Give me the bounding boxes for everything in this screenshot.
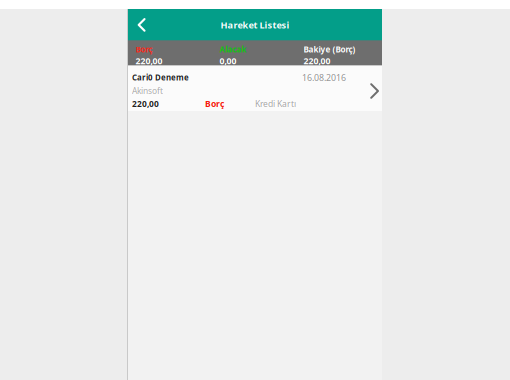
staticText: Alacak bbox=[219, 44, 246, 55]
staticText: Bakiye (Borç) bbox=[303, 44, 355, 55]
button[interactable]: Cari0 Deneme bbox=[128, 66, 382, 111]
button[interactable]: Back bbox=[128, 9, 155, 41]
staticText: Cari0 Deneme bbox=[132, 72, 189, 83]
staticText: 220,00 bbox=[303, 55, 330, 67]
staticText: Hareket Listesi bbox=[220, 19, 289, 31]
staticText: 220,00 bbox=[132, 98, 159, 109]
staticText: Borç bbox=[205, 98, 224, 109]
staticText: 220,00 bbox=[135, 55, 162, 67]
staticText: Kredi Kartı bbox=[255, 98, 296, 109]
staticText: Akinsoft bbox=[132, 85, 163, 96]
staticText: Borç bbox=[135, 44, 152, 55]
staticText: 16.08.2016 bbox=[302, 71, 346, 83]
staticText: 0,00 bbox=[219, 55, 236, 67]
